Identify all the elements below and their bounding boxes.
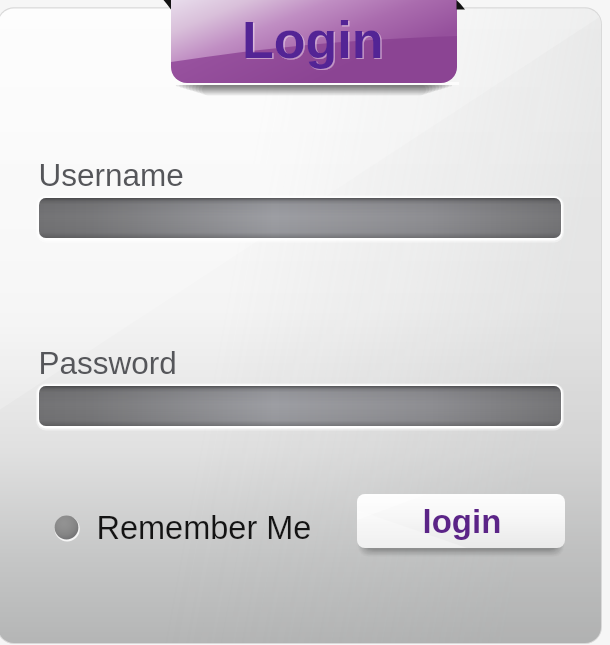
button[interactable]: Remember Me (50, 505, 310, 551)
button[interactable]: login (357, 494, 565, 548)
button[interactable]: Username field (39, 198, 561, 238)
button[interactable]: Password field (39, 386, 561, 426)
